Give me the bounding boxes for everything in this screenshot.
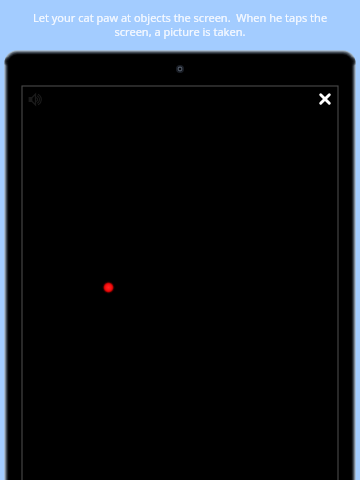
button[interactable]: Close (312, 86, 338, 112)
staticText: Let your cat paw at objects the screen. … (28, 10, 332, 39)
button[interactable]: Camera view - tap to take a picture (22, 86, 338, 480)
button[interactable]: Sound (22, 86, 48, 112)
